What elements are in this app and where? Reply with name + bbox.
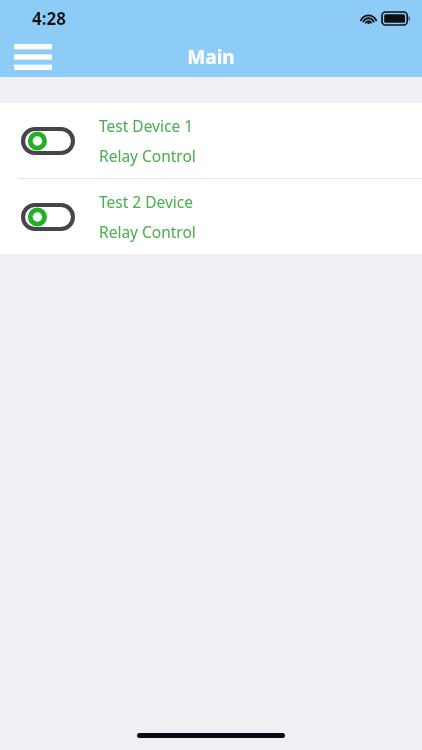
button[interactable]: Toggle Test Device 1 relay	[21, 127, 75, 155]
staticText: Test Device 1	[99, 115, 194, 136]
button[interactable]: Toggle Test Device 1 relay	[0, 103, 422, 178]
button[interactable]: Toggle Test 2 Device relay	[0, 179, 422, 254]
staticText: Test 2 Device	[99, 191, 194, 212]
staticText: Main	[187, 44, 235, 70]
staticText: Relay Control	[99, 221, 196, 242]
staticText: Relay Control	[99, 145, 196, 166]
staticText: 4:28	[32, 7, 66, 30]
button[interactable]: Open navigation menu	[10, 40, 56, 74]
button[interactable]: Toggle Test 2 Device relay	[21, 203, 75, 231]
